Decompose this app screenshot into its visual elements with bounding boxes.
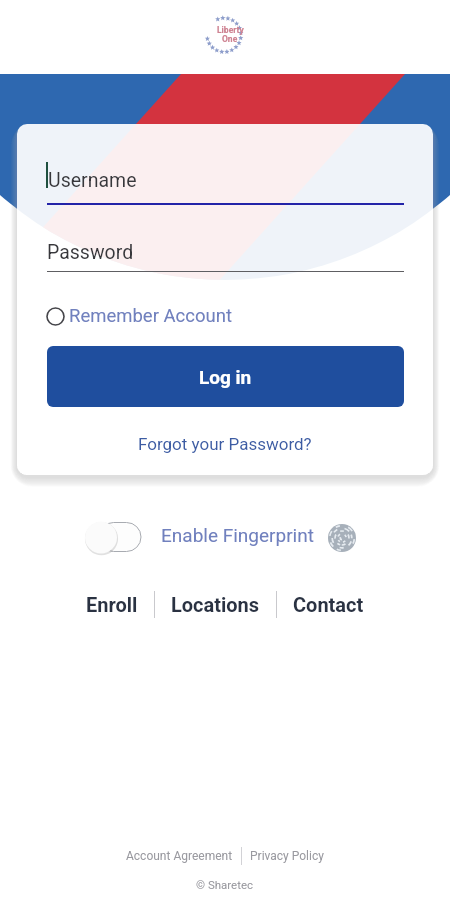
button[interactable]: Enable Fingerprint toggle xyxy=(84,518,146,556)
staticText: © Sharetec xyxy=(196,878,254,891)
button[interactable]: Fingerprint login xyxy=(328,524,356,552)
staticText: Username xyxy=(48,169,137,192)
button[interactable]: Account Agreement xyxy=(126,849,233,863)
staticText: Log in xyxy=(199,366,252,388)
staticText: One xyxy=(222,34,238,44)
button[interactable]: Username xyxy=(46,166,137,192)
button[interactable]: Password xyxy=(47,241,134,264)
button[interactable]: Enroll xyxy=(86,593,138,616)
button[interactable]: Contact xyxy=(293,593,364,616)
button[interactable]: Enable Fingerprint xyxy=(161,524,314,546)
staticText: Remember Account xyxy=(69,305,232,327)
staticText: Liberty xyxy=(217,25,244,35)
button[interactable]: Forgot your Password? xyxy=(138,434,312,454)
button[interactable]: Privacy Policy xyxy=(250,849,324,863)
button[interactable]: Log in xyxy=(47,346,404,407)
button[interactable]: Remember Account xyxy=(46,305,232,327)
button[interactable]: Locations xyxy=(171,593,260,616)
